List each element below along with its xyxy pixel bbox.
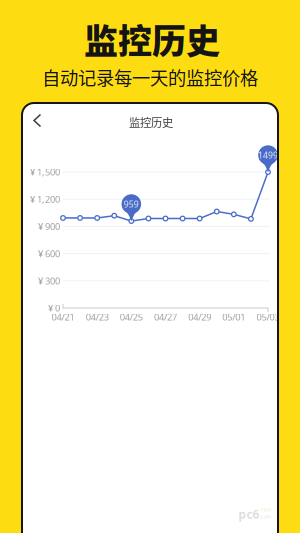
staticText: 04/23 (86, 311, 109, 323)
staticText: 04/27 (154, 311, 177, 323)
staticText: ¥ 1,200 (30, 193, 60, 205)
staticText: ¥ 0 (48, 302, 60, 314)
staticText: 监控历史 (129, 114, 173, 130)
staticText: ¥ 300 (38, 274, 60, 287)
staticText: ¥ 1,500 (30, 166, 60, 178)
staticText: .com (259, 513, 271, 520)
staticText: 05/01 (222, 311, 245, 323)
staticText: 05/03 (256, 311, 279, 323)
staticText: 下载站 (259, 507, 271, 513)
button[interactable]: Back (22, 103, 54, 139)
staticText: 04/21 (51, 311, 74, 323)
staticText: pc6 (238, 506, 259, 522)
staticText: 1499 (258, 149, 278, 161)
staticText: 04/25 (120, 311, 143, 323)
staticText: ¥ 600 (38, 247, 60, 260)
staticText: ¥ 900 (38, 220, 60, 233)
staticText: 自动记录每一天的监控价格 (42, 64, 258, 90)
staticText: 04/29 (188, 311, 211, 323)
staticText: 959 (124, 198, 139, 210)
staticText: 监控历史 (84, 14, 220, 64)
